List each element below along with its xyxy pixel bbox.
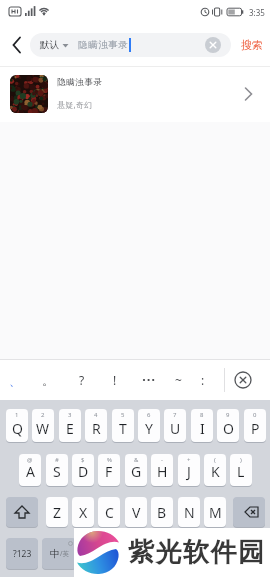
button[interactable]	[204, 497, 226, 527]
button[interactable]: 默认	[30, 33, 231, 57]
button[interactable]	[72, 497, 94, 527]
staticText: M	[209, 503, 222, 522]
button[interactable]	[32, 409, 54, 442]
button[interactable]	[138, 409, 160, 442]
button[interactable]: 隐瞒浊事录	[0, 67, 270, 122]
staticText: V	[132, 503, 141, 522]
button[interactable]	[151, 454, 173, 486]
staticText: !	[113, 372, 117, 388]
button[interactable]: ?123	[6, 538, 38, 569]
button[interactable]	[98, 497, 120, 527]
staticText: I	[200, 419, 205, 438]
button[interactable]: ?	[71, 365, 93, 395]
staticText: 7	[173, 411, 177, 419]
button[interactable]	[151, 497, 173, 527]
staticText: 4	[94, 411, 98, 419]
button[interactable]	[112, 409, 134, 442]
staticText: &	[134, 456, 139, 464]
staticText: 隐瞒浊事录	[78, 39, 128, 51]
button[interactable]: !	[104, 365, 126, 395]
button[interactable]	[6, 409, 28, 442]
staticText: 5	[121, 411, 125, 419]
staticText: Z	[53, 503, 62, 522]
staticText: R	[92, 419, 101, 438]
staticText: K	[211, 462, 220, 481]
staticText: ?	[79, 372, 85, 388]
button[interactable]	[72, 454, 94, 486]
button[interactable]	[46, 497, 68, 527]
button[interactable]: 紫光软件园	[74, 528, 270, 577]
button[interactable]: 搜索	[236, 33, 268, 57]
button[interactable]	[98, 454, 120, 486]
button[interactable]	[217, 409, 239, 442]
button[interactable]: :	[192, 365, 214, 395]
button[interactable]	[164, 409, 186, 442]
staticText: A	[26, 462, 35, 481]
staticText: D	[78, 462, 89, 481]
button[interactable]	[46, 454, 68, 486]
button[interactable]: 、	[4, 365, 26, 395]
button[interactable]: 。	[37, 365, 59, 395]
staticText: /英	[60, 549, 69, 558]
staticText: 6	[147, 411, 151, 419]
button[interactable]	[6, 497, 38, 527]
button[interactable]	[191, 409, 213, 442]
button[interactable]	[85, 409, 107, 442]
button[interactable]	[194, 538, 226, 569]
button[interactable]	[138, 365, 160, 395]
button[interactable]	[244, 409, 266, 442]
staticText: J	[187, 462, 191, 481]
staticText: C	[105, 503, 114, 522]
button[interactable]	[125, 454, 147, 486]
staticText: :	[201, 372, 205, 388]
staticText: +	[187, 456, 191, 464]
button[interactable]	[19, 454, 41, 486]
staticText: 3	[68, 411, 72, 419]
button[interactable]	[229, 538, 264, 569]
button[interactable]	[233, 497, 265, 527]
button[interactable]	[125, 497, 147, 527]
staticText: 0	[253, 411, 257, 419]
staticText: 悬疑,奇幻	[57, 99, 93, 110]
button[interactable]	[230, 454, 252, 486]
staticText: ~	[175, 372, 182, 388]
staticText: 中	[50, 547, 60, 560]
staticText: O	[223, 419, 234, 438]
button[interactable]	[178, 497, 200, 527]
staticText: @	[27, 456, 33, 464]
staticText: X	[79, 503, 88, 522]
staticText: W	[36, 419, 50, 438]
staticText: 1	[15, 411, 19, 419]
staticText: F	[105, 462, 113, 481]
staticText: 2	[41, 411, 45, 419]
staticText: S	[53, 462, 61, 481]
staticText: L	[237, 462, 245, 481]
button[interactable]: 中	[42, 538, 76, 569]
button[interactable]: ~	[167, 365, 189, 395]
staticText: #	[55, 456, 59, 464]
button[interactable]	[205, 37, 221, 53]
staticText: 。	[42, 373, 54, 388]
staticText: (	[214, 456, 216, 464]
button[interactable]	[204, 454, 226, 486]
staticText: $	[81, 456, 85, 464]
staticText: Y	[145, 419, 153, 438]
button[interactable]	[59, 409, 81, 442]
staticText: H	[157, 462, 168, 481]
staticText: U	[170, 419, 181, 438]
button[interactable]	[234, 371, 252, 389]
staticText: Q	[12, 419, 23, 438]
staticText: N	[184, 503, 195, 522]
staticText: G	[131, 462, 142, 481]
staticText: 隐瞒浊事录	[57, 77, 102, 88]
staticText: 默认	[40, 39, 59, 51]
staticText: -	[161, 456, 163, 464]
staticText: 、	[9, 373, 21, 388]
staticText: %	[107, 456, 112, 464]
button[interactable]	[6, 33, 28, 57]
staticText: )	[240, 456, 242, 464]
staticText: B	[157, 503, 167, 522]
button[interactable]	[80, 538, 190, 569]
button[interactable]	[178, 454, 200, 486]
staticText: ?123	[13, 548, 32, 560]
